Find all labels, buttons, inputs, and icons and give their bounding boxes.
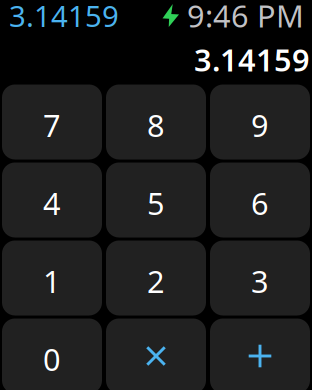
button[interactable]: 1 (2, 240, 102, 315)
staticText: 0 (43, 339, 61, 379)
button[interactable]: 6 (210, 162, 310, 237)
staticText: 8 (147, 105, 165, 145)
button[interactable]: 8 (106, 84, 206, 159)
staticText: 4 (43, 183, 61, 223)
staticText: 3.14159 (9, 0, 119, 35)
button[interactable]: Add (210, 318, 310, 390)
button[interactable]: 7 (2, 84, 102, 159)
button[interactable]: 4 (2, 162, 102, 237)
staticText: 9:46 PM (187, 0, 304, 36)
staticText: 9 (251, 105, 269, 145)
staticText: 1 (43, 261, 61, 301)
button[interactable]: 2 (106, 240, 206, 315)
staticText: 2 (147, 261, 165, 301)
button[interactable]: 3 (210, 240, 310, 315)
staticText: 3.14159 (194, 39, 310, 80)
staticText: 6 (251, 183, 269, 223)
staticText: 7 (43, 105, 61, 145)
button[interactable]: 5 (106, 162, 206, 237)
button[interactable]: 0 (2, 318, 102, 390)
staticText: 3 (251, 261, 269, 301)
button[interactable]: Multiply (106, 318, 206, 390)
button[interactable]: 9 (210, 84, 310, 159)
staticText: 5 (147, 183, 165, 223)
